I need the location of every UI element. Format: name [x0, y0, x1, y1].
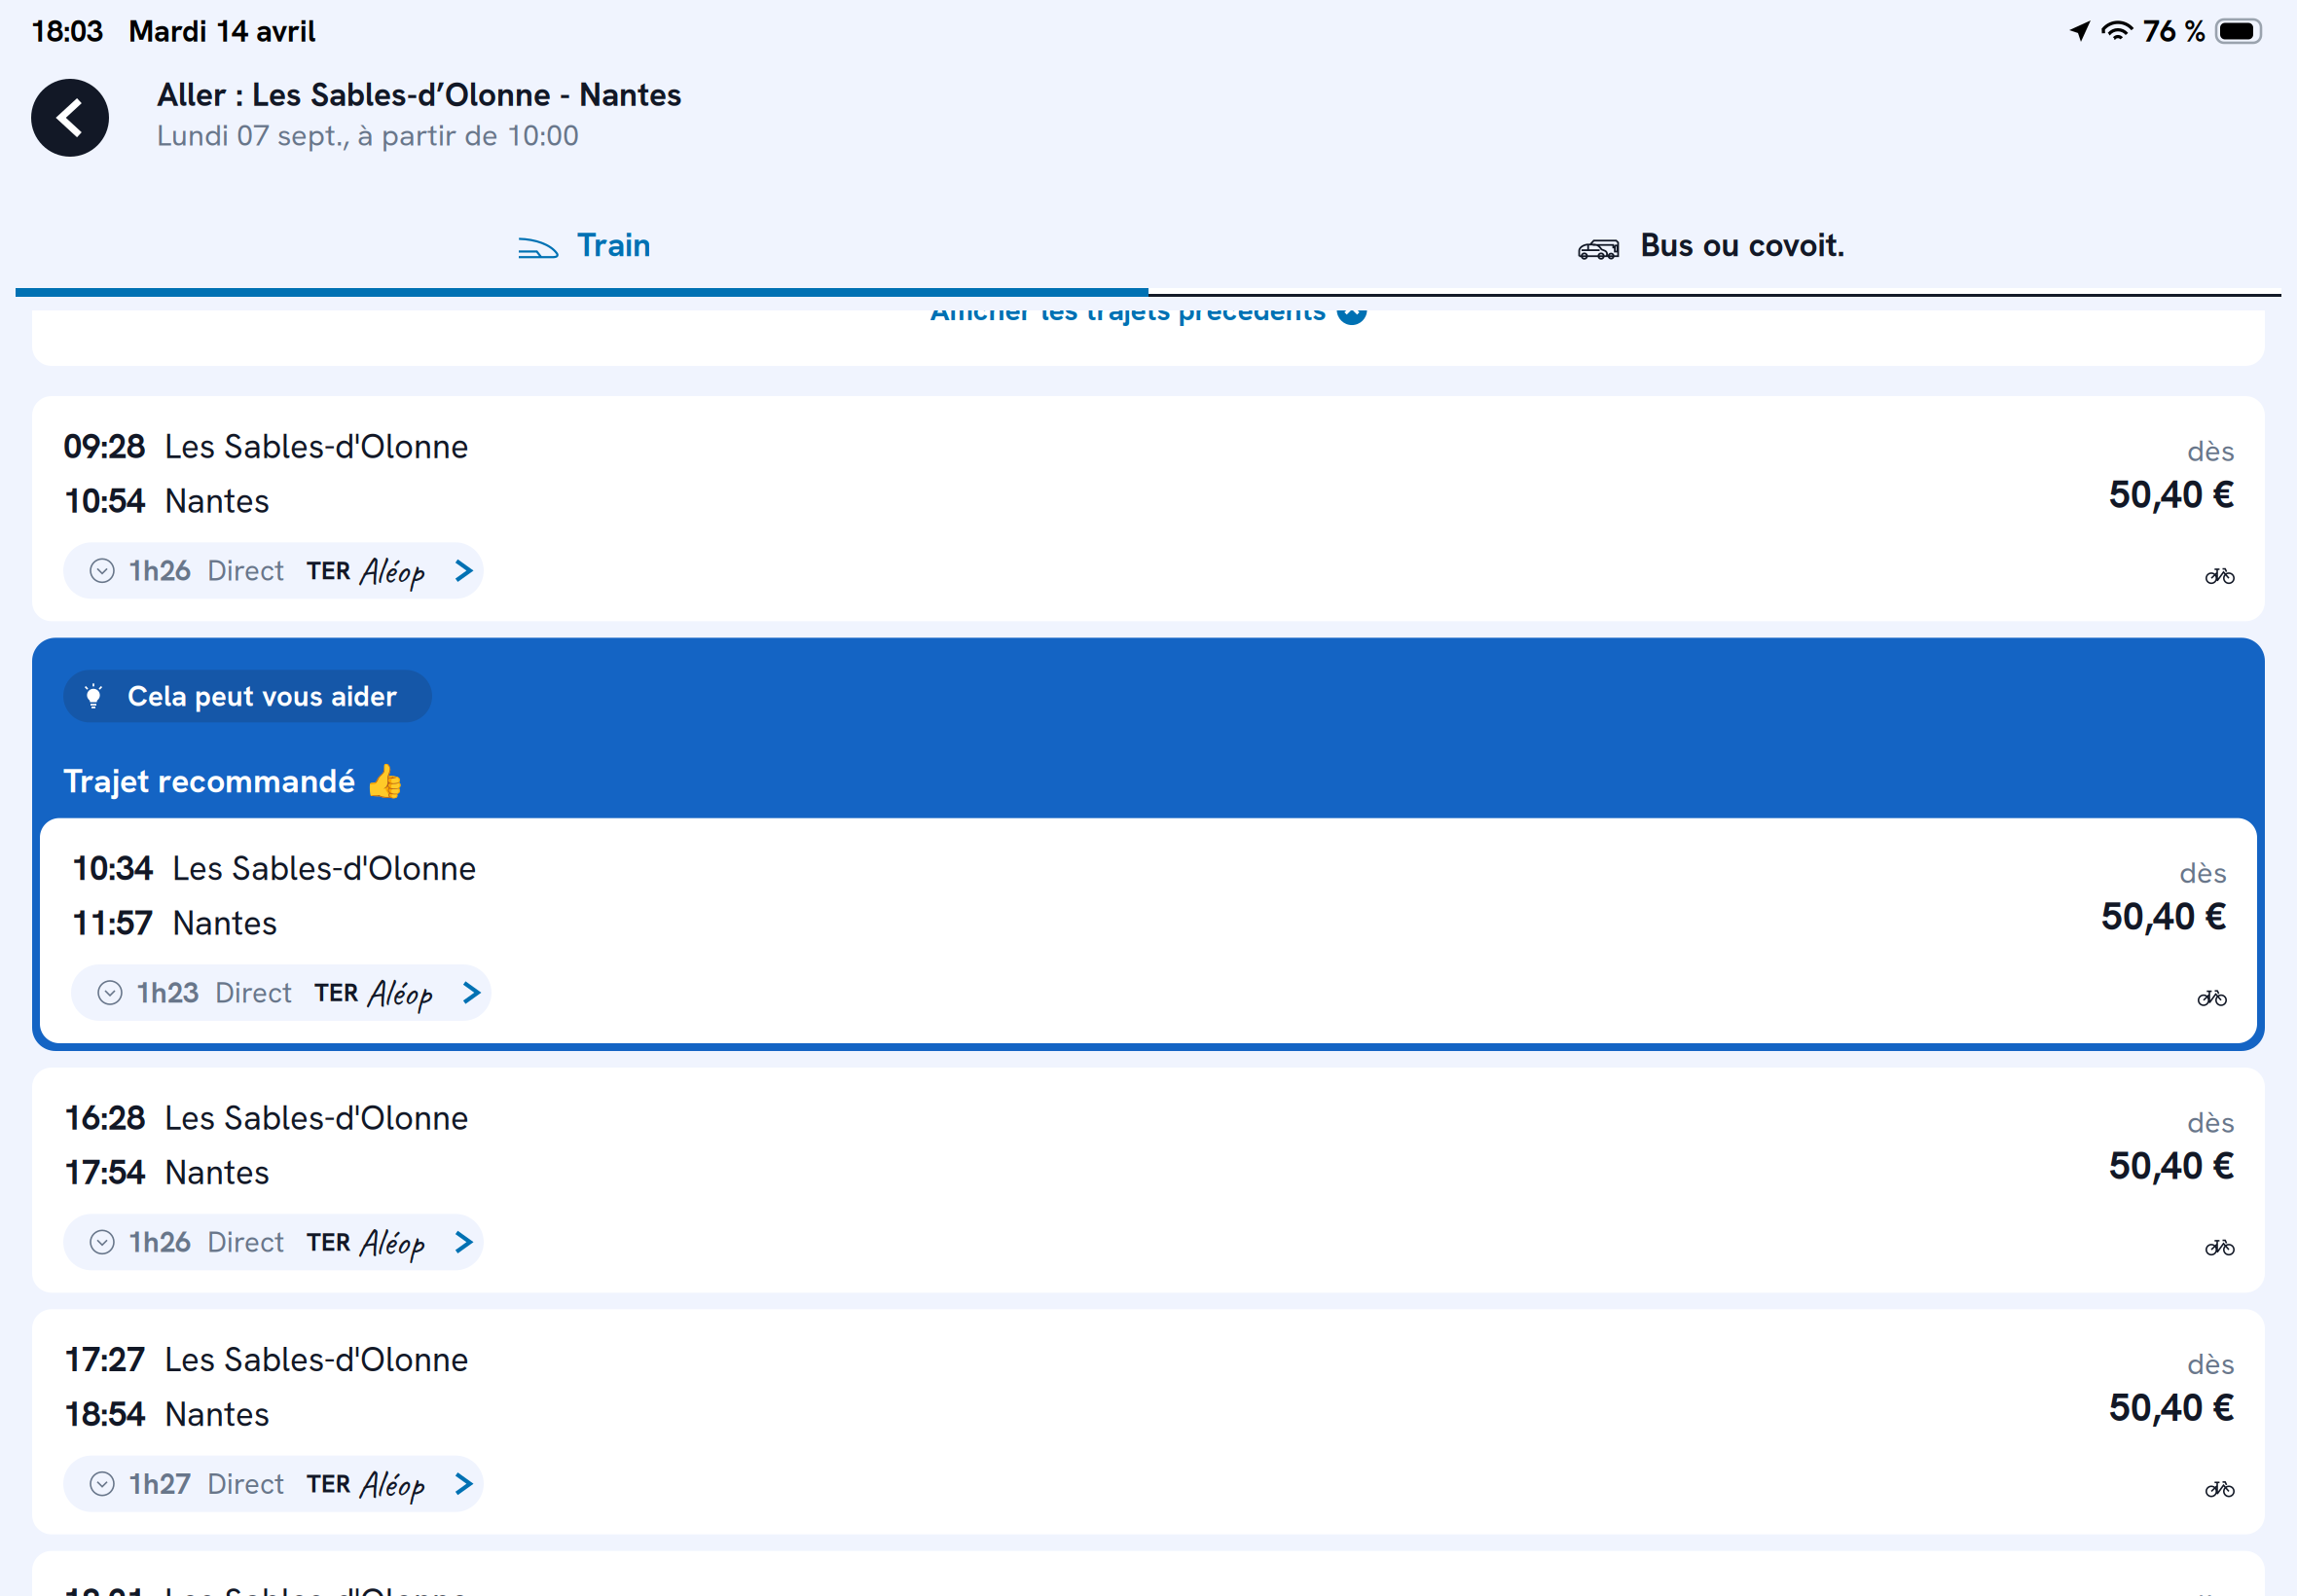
- button[interactable]: 17:27: [32, 1309, 2265, 1534]
- staticText: Nantes: [172, 901, 277, 945]
- button[interactable]: Bus ou covoit.: [1148, 175, 2297, 288]
- staticText: 09:28: [63, 424, 145, 468]
- staticText: 18:21: [63, 1579, 145, 1596]
- staticText: Les Sables-d'Olonne: [164, 1096, 469, 1140]
- staticText: 50,40 €: [2109, 470, 2235, 519]
- staticText: TER: [307, 1226, 351, 1258]
- staticText: 18:03: [30, 12, 103, 51]
- staticText: Aléop: [357, 547, 423, 594]
- staticText: dès: [2187, 1103, 2235, 1142]
- button[interactable]: 1h27: [63, 1456, 484, 1512]
- button[interactable]: 1h26: [63, 542, 484, 599]
- staticText: Nantes: [164, 1150, 270, 1194]
- staticText: 1h27: [128, 1465, 191, 1502]
- staticText: Aléop: [357, 1460, 423, 1507]
- staticText: TER: [307, 1468, 351, 1500]
- staticText: TER: [314, 977, 359, 1009]
- staticText: dès: [2179, 853, 2227, 892]
- button[interactable]: Retour: [31, 79, 109, 157]
- staticText: 76 %: [2143, 12, 2206, 51]
- button[interactable]: Cela peut vous aider: [63, 670, 432, 722]
- staticText: Cela peut vous aider: [128, 678, 397, 715]
- staticText: Les Sables-d'Olonne: [164, 1337, 469, 1381]
- staticText: 50,40 €: [2109, 1141, 2235, 1190]
- staticText: 11:57: [71, 901, 153, 945]
- staticText: TER: [307, 555, 351, 587]
- staticText: 1h23: [135, 974, 199, 1011]
- staticText: 1h26: [128, 1223, 191, 1261]
- staticText: Direct: [207, 552, 284, 589]
- button[interactable]: Afficher les trajets précédents: [32, 310, 2265, 366]
- staticText: Bus ou covoit.: [1641, 224, 1845, 266]
- button[interactable]: 1h23: [71, 964, 492, 1021]
- staticText: Les Sables-d'Olonne: [172, 846, 477, 890]
- button[interactable]: 16:28: [32, 1068, 2265, 1293]
- staticText: Direct: [215, 974, 292, 1011]
- button[interactable]: 1h26: [63, 1214, 484, 1270]
- staticText: 17:27: [63, 1337, 145, 1381]
- staticText: Nantes: [164, 479, 270, 523]
- staticText: Train: [577, 224, 651, 266]
- staticText: Trajet recommandé 👍: [63, 759, 405, 802]
- staticText: Nantes: [164, 1392, 270, 1436]
- staticText: Afficher les trajets précédents: [930, 291, 1326, 329]
- button[interactable]: 10:34: [40, 818, 2257, 1043]
- button[interactable]: 18:21: [32, 1551, 2265, 1596]
- staticText: Mardi 14 avril: [128, 12, 316, 51]
- staticText: 18:54: [63, 1392, 145, 1436]
- staticText: Les Sables-d'Olonne: [164, 1579, 469, 1596]
- staticText: dès: [2187, 431, 2235, 470]
- staticText: dès: [2187, 1344, 2235, 1383]
- staticText: Les Sables-d'Olonne: [164, 424, 469, 468]
- staticText: 10:34: [71, 846, 153, 890]
- staticText: 50,40 €: [2109, 1383, 2235, 1432]
- staticText: 1h26: [128, 552, 191, 589]
- staticText: 16:28: [63, 1096, 145, 1140]
- button[interactable]: Train: [0, 175, 1148, 288]
- staticText: Aller : Les Sables-d’Olonne - Nantes: [157, 73, 682, 116]
- staticText: Lundi 07 sept., à partir de 10:00: [157, 116, 579, 154]
- staticText: Aléop: [365, 969, 431, 1016]
- staticText: Aléop: [357, 1218, 423, 1266]
- staticText: 10:54: [63, 479, 145, 523]
- staticText: 50,40 €: [2101, 892, 2227, 941]
- staticText: dès: [2187, 1586, 2235, 1596]
- staticText: Direct: [207, 1465, 284, 1502]
- staticText: Direct: [207, 1223, 284, 1261]
- button[interactable]: 09:28: [32, 396, 2265, 621]
- staticText: 17:54: [63, 1150, 145, 1194]
